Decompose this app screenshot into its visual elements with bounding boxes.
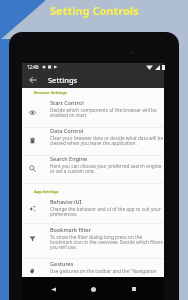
button[interactable]: Gestures [22, 260, 164, 286]
button[interactable]: Behavior/UI [22, 198, 164, 224]
staticText: Change the behavior and ui of the app to… [50, 206, 161, 218]
button[interactable]: Back [24, 71, 41, 88]
staticText: Setting Controls [50, 3, 139, 18]
staticText: Browser Settings [34, 90, 67, 95]
staticText: To show the filter dialog long press on … [50, 234, 163, 251]
staticText: Use gestures on the toolbar and the "Nav… [50, 268, 157, 274]
staticText: Gestures [50, 260, 74, 267]
staticText: Search Engine [50, 155, 88, 162]
button[interactable]: Bookmark filter [22, 226, 164, 252]
staticText: Behavior/UI [50, 198, 82, 205]
staticText: Bookmark filter [50, 226, 92, 233]
staticText: Start Control [50, 99, 84, 106]
button[interactable]: Start Control [22, 99, 164, 125]
button[interactable]: Recent apps [124, 279, 144, 299]
button[interactable]: Data Control [22, 127, 164, 153]
staticText: Data Control [50, 127, 84, 134]
staticText: Settings [48, 75, 78, 85]
staticText: 12:46 [27, 64, 39, 70]
staticText: Here you can choose your preferred searc… [50, 163, 162, 175]
staticText: Decide which components of the browser w… [50, 107, 157, 119]
staticText: App Settings [34, 189, 59, 194]
staticText: Clear your browser data or decide what d… [50, 135, 164, 147]
button[interactable]: Search Engine [22, 155, 164, 181]
button[interactable]: Back [43, 279, 63, 299]
button[interactable]: Home [83, 279, 103, 299]
